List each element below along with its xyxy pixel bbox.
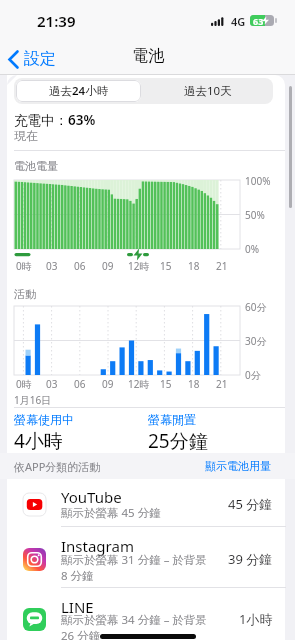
staticText: 0時 (16, 259, 32, 273)
staticText: 設定 (24, 49, 56, 69)
staticText: 09 (102, 377, 114, 391)
button[interactable]: 設定 (4, 45, 60, 73)
button[interactable]: 顯示電池用量 (205, 459, 271, 473)
staticText: 15 (160, 259, 172, 273)
staticText: 12時 (128, 259, 150, 273)
button[interactable]: YouTube (0, 478, 295, 526)
staticText: 過去10天 (184, 83, 232, 99)
staticText: YouTube (61, 487, 122, 507)
staticText: 8 分鐘 (61, 568, 94, 584)
staticText: 03 (46, 377, 58, 391)
staticText: 電池電量 (14, 159, 58, 173)
staticText: 1月16日 (14, 393, 52, 407)
staticText: 09 (102, 259, 114, 273)
staticText: 螢幕使用中 (14, 412, 74, 427)
staticText: 50% (245, 208, 265, 222)
staticText: 26 分鐘 (61, 628, 101, 640)
staticText: 25分鐘 (148, 428, 208, 454)
staticText: 4小時 (14, 428, 63, 454)
button[interactable]: LINE (0, 588, 295, 640)
button[interactable]: Instagram (0, 527, 295, 587)
staticText: 21 (216, 377, 228, 391)
staticText: 100% (245, 174, 271, 188)
staticText: 0% (245, 242, 260, 256)
staticText: 4G (231, 14, 246, 29)
staticText: 現在 (14, 128, 38, 143)
staticText: 21 (216, 259, 228, 273)
staticText: Instagram (61, 536, 134, 556)
staticText: 21:39 (37, 11, 76, 31)
staticText: 顯示於螢幕 45 分鐘 (61, 505, 161, 521)
staticText: 39 分鐘 (228, 550, 273, 568)
staticText: 顯示於螢幕 31 分鐘 – 於背景 (61, 552, 207, 568)
staticText: 0時 (16, 377, 32, 391)
staticText: 18 (188, 377, 200, 391)
staticText: 螢幕閒置 (148, 412, 196, 427)
staticText: 60分 (245, 300, 267, 314)
button[interactable]: 過去10天 (143, 78, 273, 104)
staticText: 15 (160, 377, 172, 391)
button[interactable]: 過去24小時 (16, 80, 141, 102)
staticText: 顯示於螢幕 34 分鐘 – 於背景 (61, 612, 207, 628)
staticText: 活動 (14, 287, 36, 301)
staticText: 過去24小時 (49, 83, 109, 99)
staticText: 充電中：63% (14, 111, 96, 129)
staticText: 06 (74, 377, 86, 391)
staticText: 1小時 (239, 610, 273, 628)
staticText: 63 (253, 15, 264, 26)
staticText: 45 分鐘 (228, 495, 273, 513)
staticText: LINE (61, 597, 94, 617)
staticText: 18 (188, 259, 200, 273)
staticText: 30分 (245, 334, 267, 348)
staticText: 依APP分類的活動 (14, 459, 101, 474)
staticText: 03 (46, 259, 58, 273)
staticText: 06 (74, 259, 86, 273)
staticText: 12時 (128, 377, 150, 391)
staticText: 電池 (132, 46, 164, 66)
staticText: 0分 (245, 368, 261, 382)
